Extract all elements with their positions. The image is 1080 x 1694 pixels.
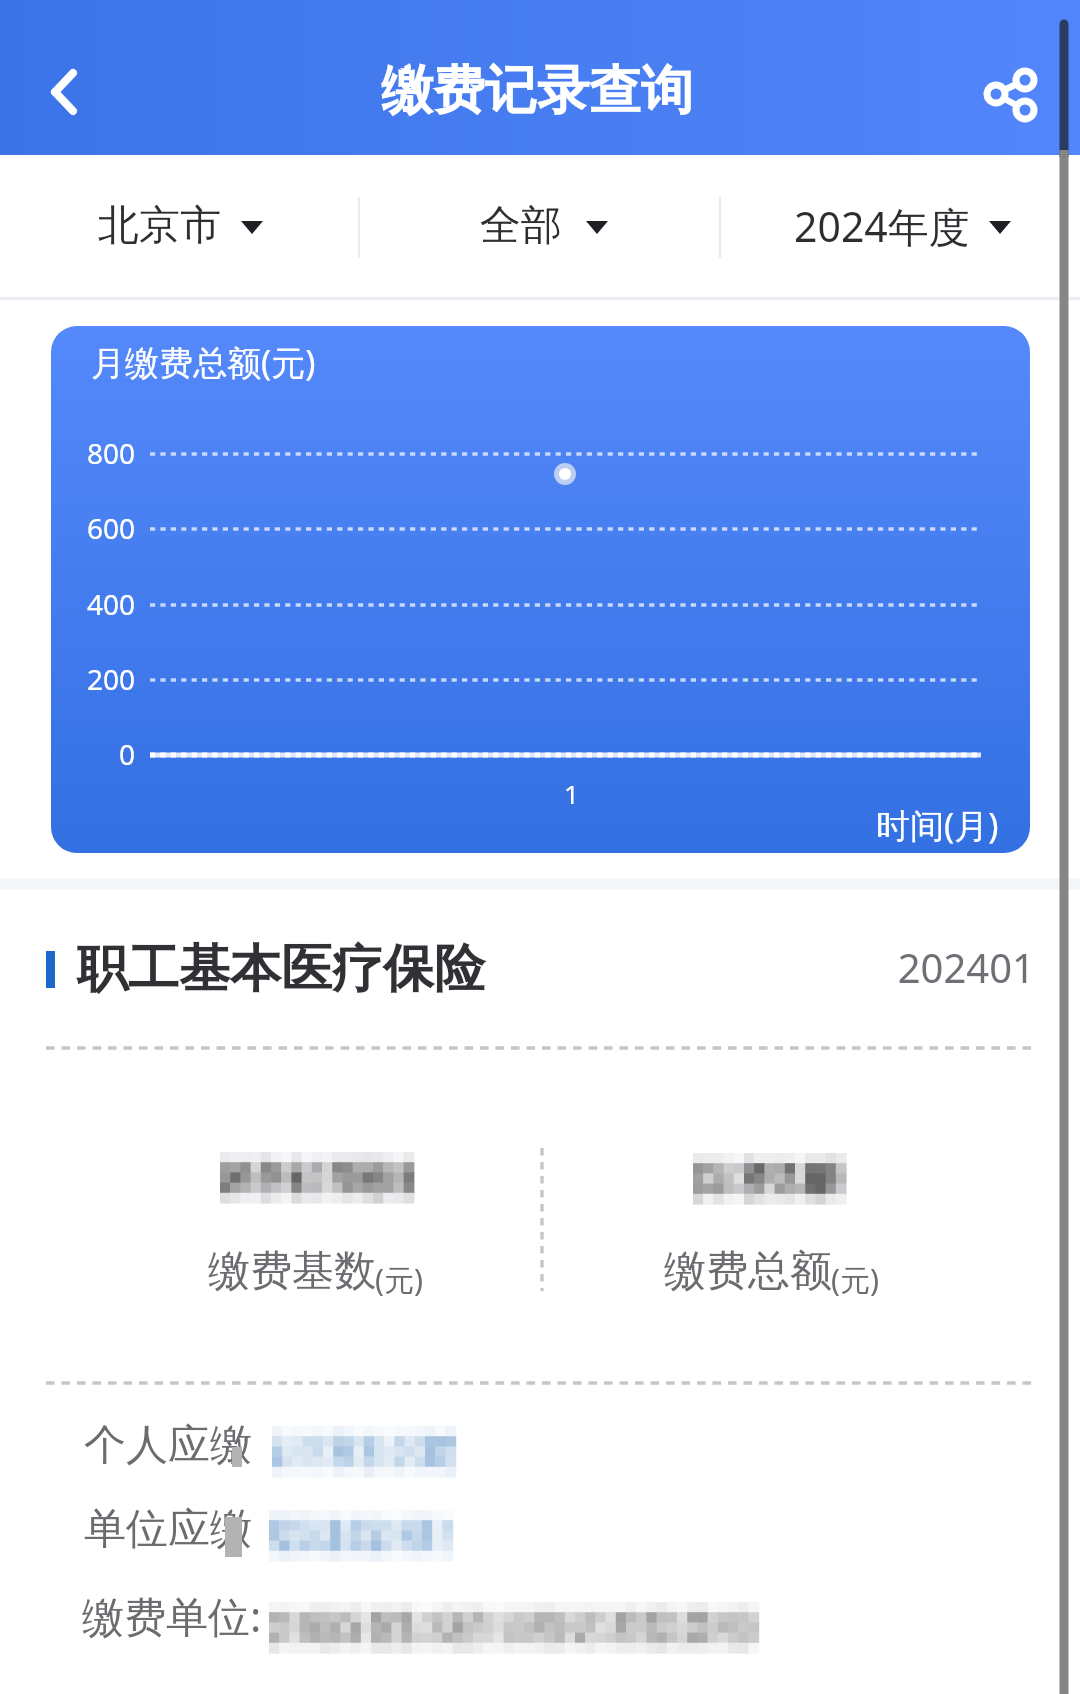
staticText: 个人应缴	[84, 1419, 252, 1472]
staticText: 202401	[0, 940, 1035, 994]
staticText: 单位应缴	[84, 1503, 252, 1556]
staticText: 200	[63, 660, 135, 698]
staticText: 600	[63, 509, 135, 547]
staticText: 1	[564, 776, 579, 811]
button[interactable]: Share	[956, 44, 1056, 148]
button[interactable]: Back	[22, 46, 108, 138]
staticText: 缴费基数	[208, 1245, 376, 1298]
staticText: 缴费记录查询	[381, 58, 693, 124]
staticText: 800	[63, 434, 135, 472]
staticText: 职工基本医疗保险	[77, 937, 485, 1001]
staticText: 月缴费总额(元)	[91, 339, 316, 385]
button[interactable]: 北京市	[98, 185, 263, 267]
staticText: 400	[63, 585, 135, 623]
staticText: (元)	[375, 1259, 423, 1300]
staticText: 缴费单位:	[82, 1587, 262, 1644]
staticText: 2024年度	[794, 198, 970, 254]
staticText: 0	[63, 735, 135, 773]
staticText: 全部	[480, 200, 562, 252]
button[interactable]: 2024年度	[794, 185, 1011, 267]
staticText: 缴费总额	[664, 1245, 832, 1298]
staticText: (元)	[831, 1259, 879, 1300]
button[interactable]: 全部	[480, 185, 608, 267]
staticText: 时间(月)	[876, 802, 999, 848]
staticText: 北京市	[98, 200, 221, 252]
